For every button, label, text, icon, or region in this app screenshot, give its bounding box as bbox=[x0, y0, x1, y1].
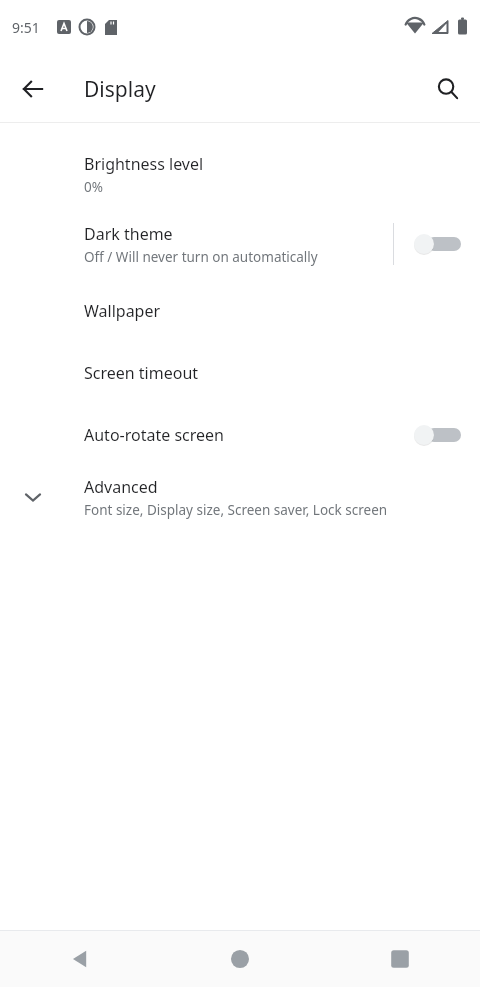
button[interactable]: Advanced bbox=[0, 466, 480, 528]
button[interactable]: Toggle bbox=[412, 224, 466, 264]
button[interactable]: Screen timeout bbox=[0, 342, 480, 404]
staticText: 9:51 bbox=[12, 18, 40, 37]
staticText: Advanced bbox=[84, 476, 158, 498]
staticText: Auto-rotate screen bbox=[84, 424, 224, 446]
button[interactable]: Home bbox=[160, 931, 320, 987]
staticText: Off / Will never turn on automatically bbox=[84, 248, 318, 266]
staticText: Display bbox=[84, 75, 156, 104]
staticText: Brightness level bbox=[84, 153, 204, 175]
button[interactable]: Brightness level bbox=[0, 140, 480, 208]
staticText: Font size, Display size, Screen saver, L… bbox=[84, 501, 388, 519]
button[interactable]: Wallpaper bbox=[0, 280, 480, 342]
staticText: Wallpaper bbox=[84, 300, 161, 322]
button[interactable]: Auto-rotate screen bbox=[0, 404, 480, 466]
staticText: 0% bbox=[84, 178, 103, 196]
staticText: Screen timeout bbox=[84, 362, 199, 384]
button[interactable]: Toggle bbox=[412, 415, 466, 455]
button[interactable]: Dark theme bbox=[0, 208, 480, 280]
button[interactable]: Search bbox=[424, 65, 472, 113]
button[interactable]: Back bbox=[0, 931, 160, 987]
button[interactable]: Back bbox=[9, 65, 57, 113]
button[interactable]: Recent apps bbox=[320, 931, 480, 987]
staticText: Dark theme bbox=[84, 223, 173, 245]
